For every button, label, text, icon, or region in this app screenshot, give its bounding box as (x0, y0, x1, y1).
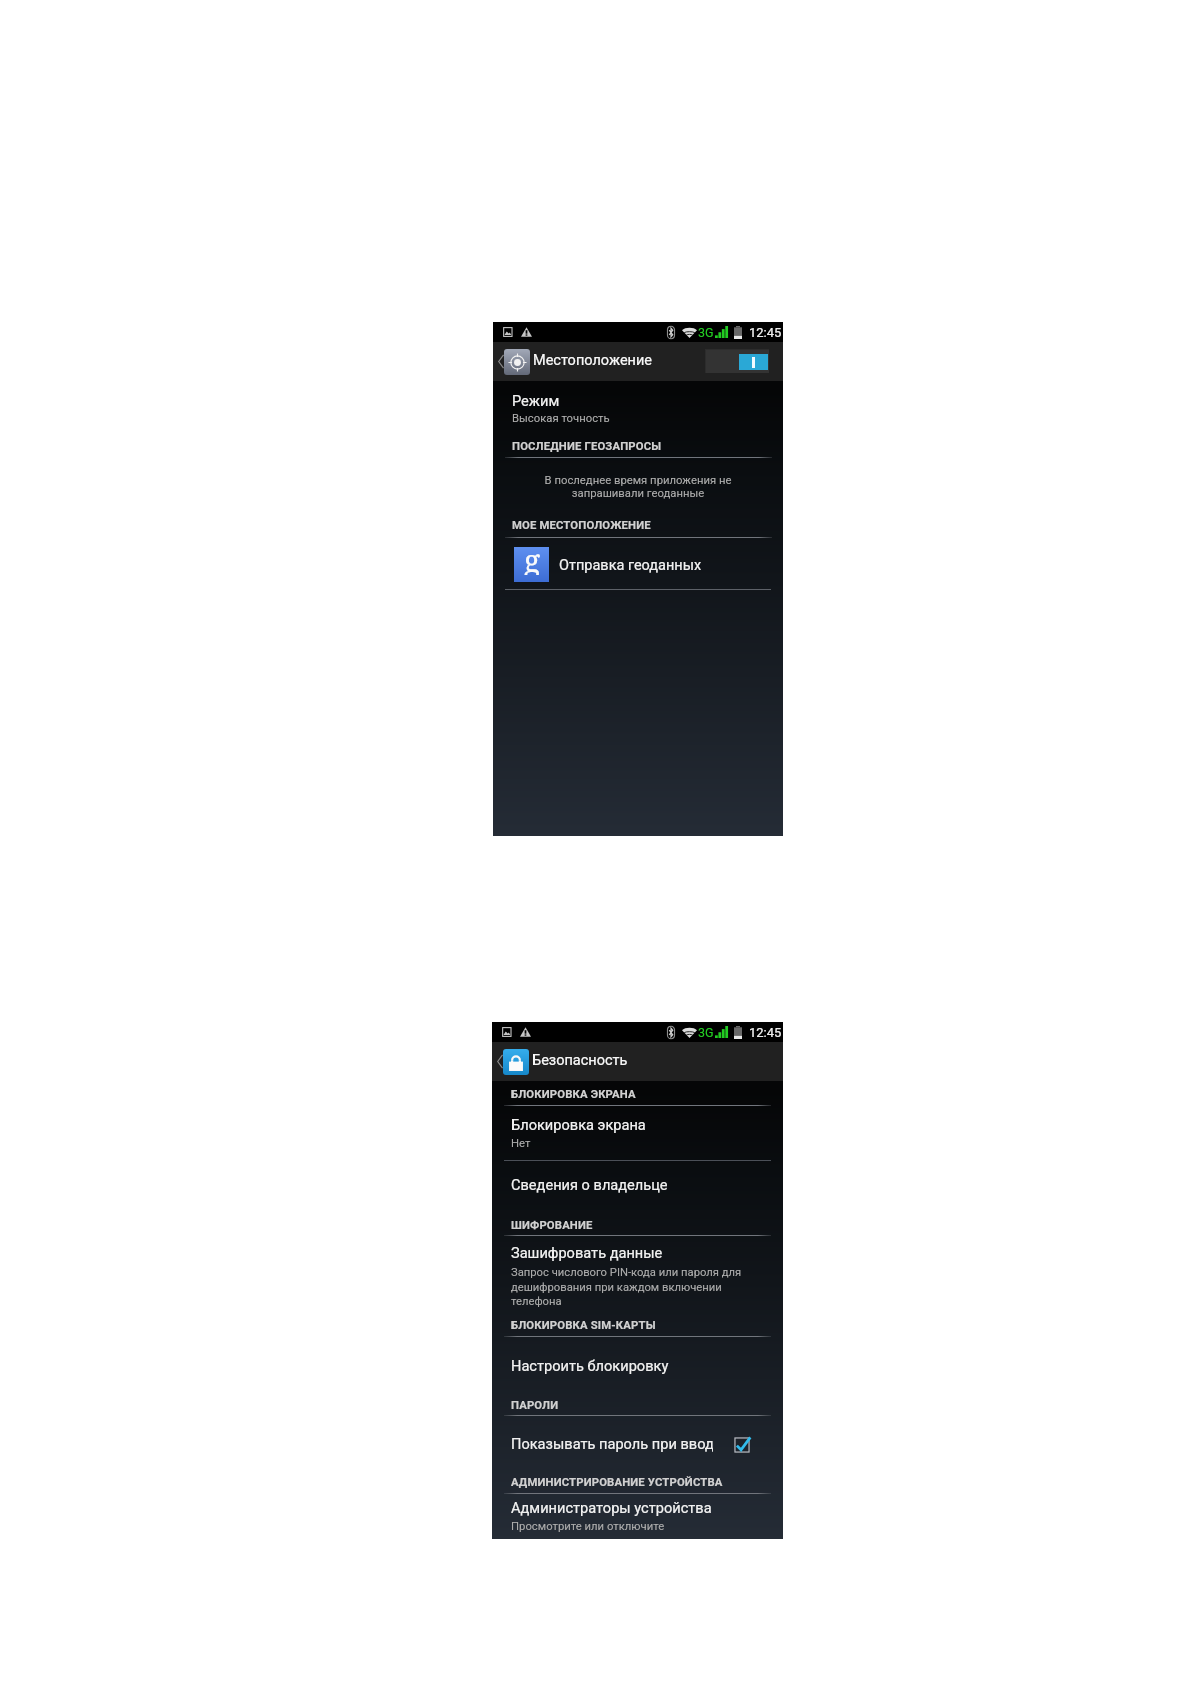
button[interactable]: Переключатель местоположения (705, 349, 769, 373)
staticText: ПАРОЛИ (511, 1399, 559, 1412)
staticText: БЛОКИРОВКА SIM-КАРТЫ (511, 1319, 656, 1332)
staticText: g (524, 540, 541, 575)
staticText: Запрос числового PIN-кода или пароля для (511, 1266, 742, 1279)
button[interactable]: Сведения о владельце (492, 1176, 783, 1202)
staticText: Местоположение (533, 352, 652, 369)
button[interactable]: Назад: Безопасность (492, 1042, 692, 1081)
staticText: телефона (511, 1295, 562, 1308)
staticText: 3G (698, 325, 714, 340)
button[interactable]: Назад: Местоположение (493, 342, 693, 381)
button[interactable]: Блокировка экрана (492, 1116, 783, 1154)
staticText: Сведения о владельце (511, 1176, 668, 1193)
button[interactable]: Зашифровать данные (492, 1244, 783, 1310)
staticText: 12:45 (749, 1025, 782, 1040)
staticText: ШИФРОВАНИЕ (511, 1219, 593, 1232)
staticText: В последнее время приложения не (513, 474, 763, 487)
staticText: Администраторы устройства (511, 1499, 712, 1516)
staticText: Просмотрите или отключите (511, 1520, 665, 1533)
staticText: Отправка геоданных (559, 557, 702, 574)
staticText: АДМИНИСТРИРОВАНИЕ УСТРОЙСТВА (511, 1476, 723, 1489)
staticText: дешифрования при каждом включении (511, 1281, 722, 1294)
button[interactable]: Администраторы устройства (492, 1499, 783, 1539)
staticText: БЛОКИРОВКА ЭКРАНА (511, 1088, 636, 1101)
button[interactable]: Настроить блокировку (492, 1357, 783, 1383)
staticText: МОЕ МЕСТОПОЛОЖЕНИЕ (512, 519, 651, 532)
staticText: Настроить блокировку (511, 1357, 669, 1374)
staticText: Показывать пароль при вводе (511, 1435, 713, 1452)
staticText: Высокая точность (512, 412, 610, 425)
staticText: запрашивали геоданные (513, 487, 763, 500)
staticText: Блокировка экрана (511, 1116, 646, 1133)
staticText: Режим (512, 392, 560, 409)
staticText: Зашифровать данные (511, 1244, 663, 1261)
button[interactable]: Режим (493, 392, 783, 428)
staticText: 12:45 (749, 325, 782, 340)
button[interactable]: g (493, 542, 783, 588)
staticText: 3G (698, 1025, 714, 1040)
staticText: ПОСЛЕДНИЕ ГЕОЗАПРОСЫ (512, 440, 662, 453)
staticText: Безопасность (532, 1052, 628, 1069)
button[interactable]: Показывать пароль при вводе (492, 1435, 783, 1465)
staticText: Нет (511, 1137, 531, 1150)
